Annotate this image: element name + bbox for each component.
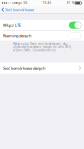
- staticText: Roaming danych: [3, 33, 31, 38]
- staticText: Orange: [12, 1, 22, 5]
- button[interactable]: Sieć komórkowa: [0, 6, 36, 13]
- staticText: Sieć komórkowa: [5, 7, 34, 12]
- button[interactable]: Sieć komórkowa danych: [0, 63, 84, 74]
- staticText: Sieć komórkowa danych: [3, 65, 45, 71]
- staticText: Włącz LTE: [3, 22, 21, 28]
- staticText: 10:46: [43, 1, 52, 5]
- staticText: 81 %: [67, 1, 74, 5]
- staticText: 3G: [23, 1, 27, 5]
- button[interactable]: Roaming danych: [0, 31, 84, 41]
- button[interactable]: Włącz LTE: [0, 20, 84, 30]
- staticText: Wyłącz opcję Dane sieci komórkowej, aby …: [13, 42, 72, 52]
